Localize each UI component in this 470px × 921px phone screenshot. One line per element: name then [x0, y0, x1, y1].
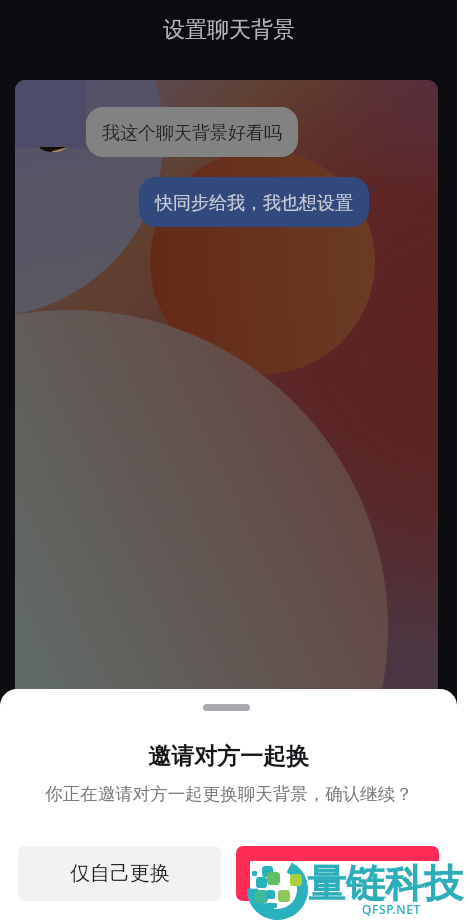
button[interactable]: 仅自己更换	[18, 846, 221, 901]
staticText: 邀请对方一起换	[148, 742, 309, 771]
staticText: 你正在邀请对方一起更换聊天背景，确认继续？	[45, 783, 413, 805]
staticText: 仅自己更换	[70, 861, 170, 886]
staticText: 我这个聊天背景好看吗	[102, 122, 282, 145]
staticText: 快同步给我，我也想设置	[155, 192, 353, 215]
staticText: 邀请对方	[298, 861, 378, 886]
staticText: 量链科技	[307, 859, 463, 908]
staticText: 设置聊天背景	[163, 16, 295, 44]
staticText: QFSP.NET	[362, 901, 421, 917]
button[interactable]: 邀请对方	[236, 846, 439, 901]
